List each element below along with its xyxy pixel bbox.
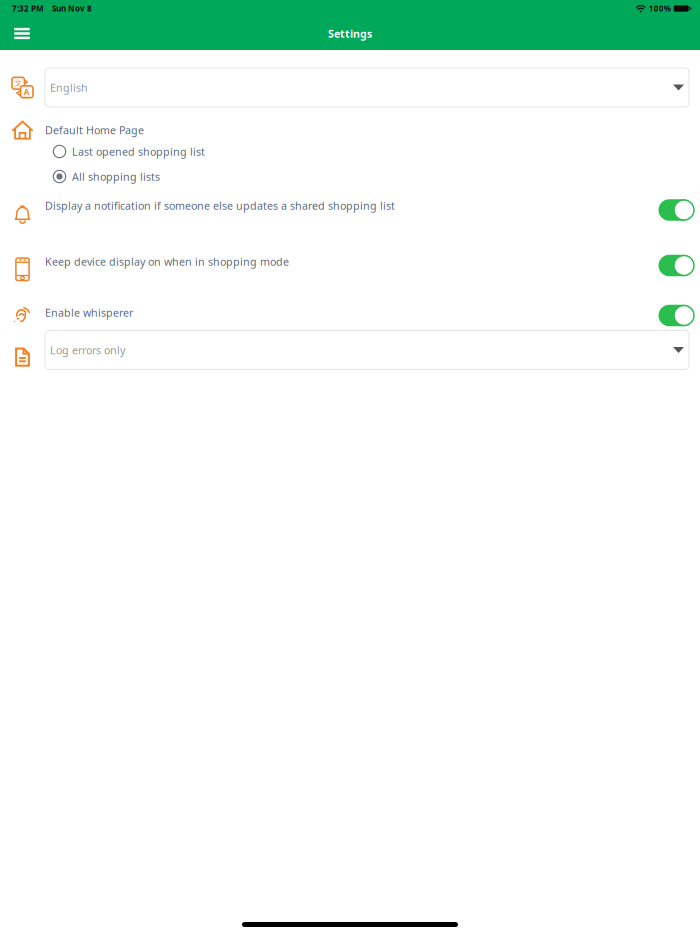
staticText: 100% xyxy=(649,3,671,14)
staticText: 文 xyxy=(14,78,22,88)
staticText: All shopping lists xyxy=(72,169,160,184)
staticText: Keep device display on when in shopping … xyxy=(45,254,289,269)
staticText: Enable whisperer xyxy=(45,305,133,320)
button[interactable]: English xyxy=(45,68,689,107)
button[interactable]: Keep device display on when in shopping … xyxy=(0,231,700,300)
staticText: Default Home Page xyxy=(45,123,144,137)
button[interactable]: Log errors only xyxy=(45,330,689,369)
staticText: Last opened shopping list xyxy=(72,144,205,159)
staticText: Display a notification if someone else u… xyxy=(45,199,395,213)
staticText: Sun Nov 8 xyxy=(52,3,92,14)
button[interactable]: Menu xyxy=(0,17,44,50)
button[interactable]: All shopping lists xyxy=(45,164,372,189)
staticText: 7:32 PM xyxy=(12,3,44,14)
staticText: A xyxy=(24,86,30,97)
button[interactable]: Last opened shopping list xyxy=(45,139,372,164)
button[interactable]: Display a notification if someone else u… xyxy=(0,189,700,231)
button[interactable]: Enable whisperer xyxy=(0,300,700,331)
staticText: English xyxy=(50,80,88,95)
staticText: Settings xyxy=(328,26,372,41)
staticText: Log errors only xyxy=(50,343,125,357)
